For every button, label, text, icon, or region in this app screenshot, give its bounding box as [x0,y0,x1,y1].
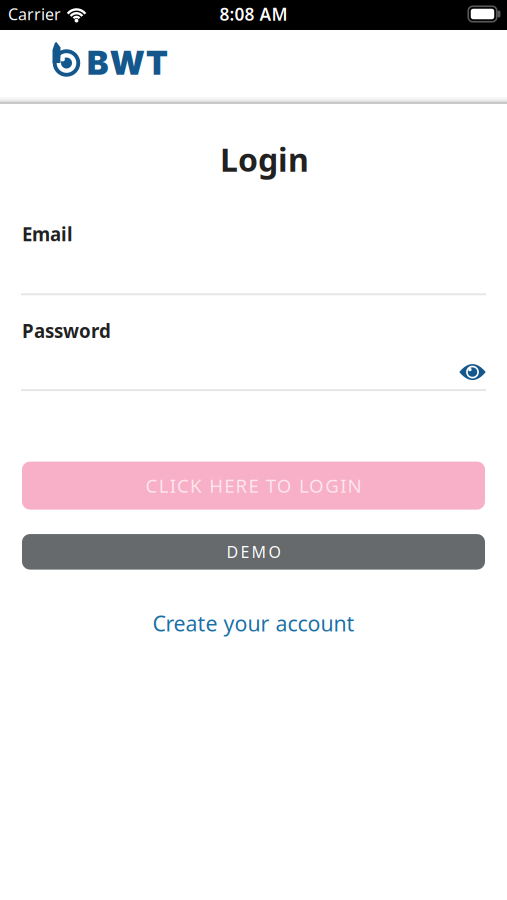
button[interactable]: Show password [459,363,486,381]
staticText: Password [22,318,111,343]
staticText: Create your account [152,609,354,637]
button[interactable]: D E M O [22,534,485,570]
staticText: Email [22,221,73,246]
staticText: Login [220,138,309,180]
button[interactable]: CLICK HERE TO LOGIN [22,462,485,510]
staticText: Carrier [8,3,61,25]
staticText: CLICK HERE TO LOGIN [146,473,361,498]
staticText: 8:08 AM [219,2,287,25]
button[interactable]: Create your account [152,609,354,637]
staticText: B W T [87,43,168,82]
staticText: D E M O [226,541,280,562]
